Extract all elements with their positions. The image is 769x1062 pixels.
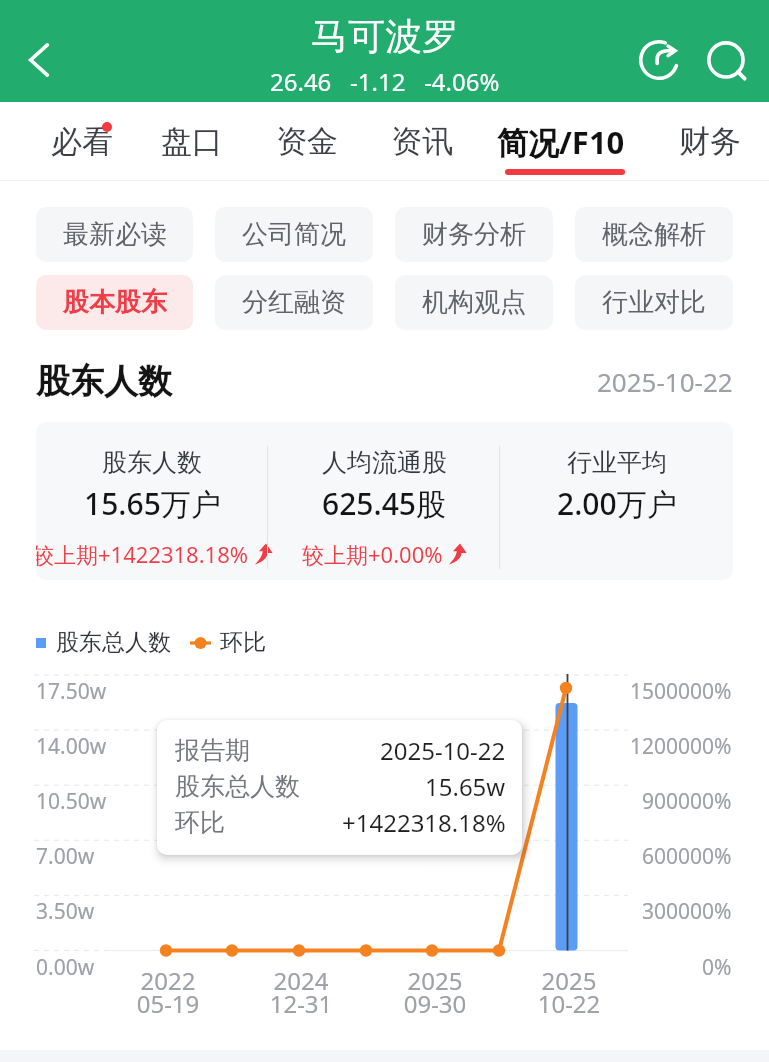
button[interactable]: Share bbox=[627, 28, 691, 92]
button[interactable]: 必看 bbox=[32, 102, 132, 181]
staticText: 公司简况 bbox=[242, 218, 346, 251]
staticText: 3.50w bbox=[36, 897, 95, 926]
staticText: 0% bbox=[702, 953, 732, 982]
staticText: 10.50w bbox=[36, 787, 107, 816]
staticText: 2.00万户 bbox=[557, 483, 677, 524]
staticText: 环比 bbox=[220, 628, 266, 657]
button[interactable]: 资金 bbox=[257, 102, 357, 181]
staticText: 7.00w bbox=[36, 842, 95, 871]
button[interactable]: 最新必读 bbox=[36, 207, 193, 262]
staticText: 资讯 bbox=[391, 122, 453, 161]
button[interactable]: 概念解析 bbox=[575, 207, 733, 262]
staticText: 2025-10-22 bbox=[597, 364, 733, 399]
staticText: 1500000% bbox=[630, 677, 732, 706]
staticText: 资金 bbox=[276, 122, 338, 161]
staticText: 0.00w bbox=[36, 953, 95, 982]
staticText: 14.00w bbox=[36, 732, 107, 761]
staticText: 15.65w bbox=[425, 770, 506, 803]
staticText: 财务分析 bbox=[422, 218, 526, 251]
staticText: 15.65万户 bbox=[84, 483, 221, 524]
staticText: 分红融资 bbox=[242, 286, 346, 319]
staticText: 股本股东 bbox=[63, 286, 167, 319]
staticText: 股东人数 bbox=[36, 360, 172, 403]
staticText: 股东总人数 bbox=[56, 628, 171, 657]
button[interactable]: 资讯 bbox=[372, 102, 472, 181]
staticText: 最新必读 bbox=[63, 218, 167, 251]
button[interactable]: 财务 bbox=[660, 102, 760, 181]
staticText: 625.45股 bbox=[322, 483, 446, 524]
staticText: 机构观点 bbox=[422, 286, 526, 319]
staticText: 2024 12-31 bbox=[241, 964, 361, 1020]
staticText: 必看 bbox=[51, 122, 113, 161]
button[interactable]: 股本股东 bbox=[36, 275, 193, 330]
staticText: 1200000% bbox=[630, 732, 732, 761]
staticText: 行业平均 bbox=[567, 447, 667, 478]
staticText: 较上期+0.00% bbox=[302, 539, 443, 569]
staticText: 简况/F10 bbox=[497, 121, 625, 163]
staticText: 盘口 bbox=[161, 122, 223, 161]
staticText: 17.50w bbox=[36, 677, 107, 706]
staticText: 股东人数 bbox=[102, 447, 202, 478]
button[interactable]: 行业对比 bbox=[575, 275, 733, 330]
staticText: 300000% bbox=[642, 897, 732, 926]
staticText: +1422318.18% bbox=[342, 806, 506, 839]
staticText: 2022 05-19 bbox=[108, 964, 228, 1020]
button[interactable]: 机构观点 bbox=[395, 275, 553, 330]
staticText: 较上期+1422318.18% bbox=[36, 539, 249, 569]
button[interactable]: 盘口 bbox=[142, 102, 242, 181]
staticText: 环比 bbox=[175, 807, 225, 838]
staticText: 报告期 bbox=[175, 735, 250, 766]
staticText: 2025 09-30 bbox=[375, 964, 495, 1020]
staticText: 概念解析 bbox=[602, 218, 706, 251]
button[interactable]: Back bbox=[0, 18, 78, 102]
staticText: 股东总人数 bbox=[175, 771, 300, 802]
staticText: 财务 bbox=[679, 122, 741, 161]
button[interactable]: 分红融资 bbox=[215, 275, 373, 330]
staticText: 900000% bbox=[642, 787, 732, 816]
staticText: 2025-10-22 bbox=[380, 734, 506, 767]
button[interactable]: 简况/F10 bbox=[477, 102, 645, 181]
button[interactable]: Search bbox=[697, 31, 761, 95]
button[interactable]: 公司简况 bbox=[215, 207, 373, 262]
staticText: 行业对比 bbox=[602, 286, 706, 319]
staticText: 马可波罗 bbox=[311, 13, 459, 60]
staticText: 26.46 -1.12 -4.06% bbox=[270, 65, 500, 98]
staticText: 2025 10-22 bbox=[509, 964, 629, 1020]
button[interactable]: 财务分析 bbox=[395, 207, 553, 262]
staticText: 600000% bbox=[642, 842, 732, 871]
staticText: 人均流通股 bbox=[322, 447, 447, 478]
